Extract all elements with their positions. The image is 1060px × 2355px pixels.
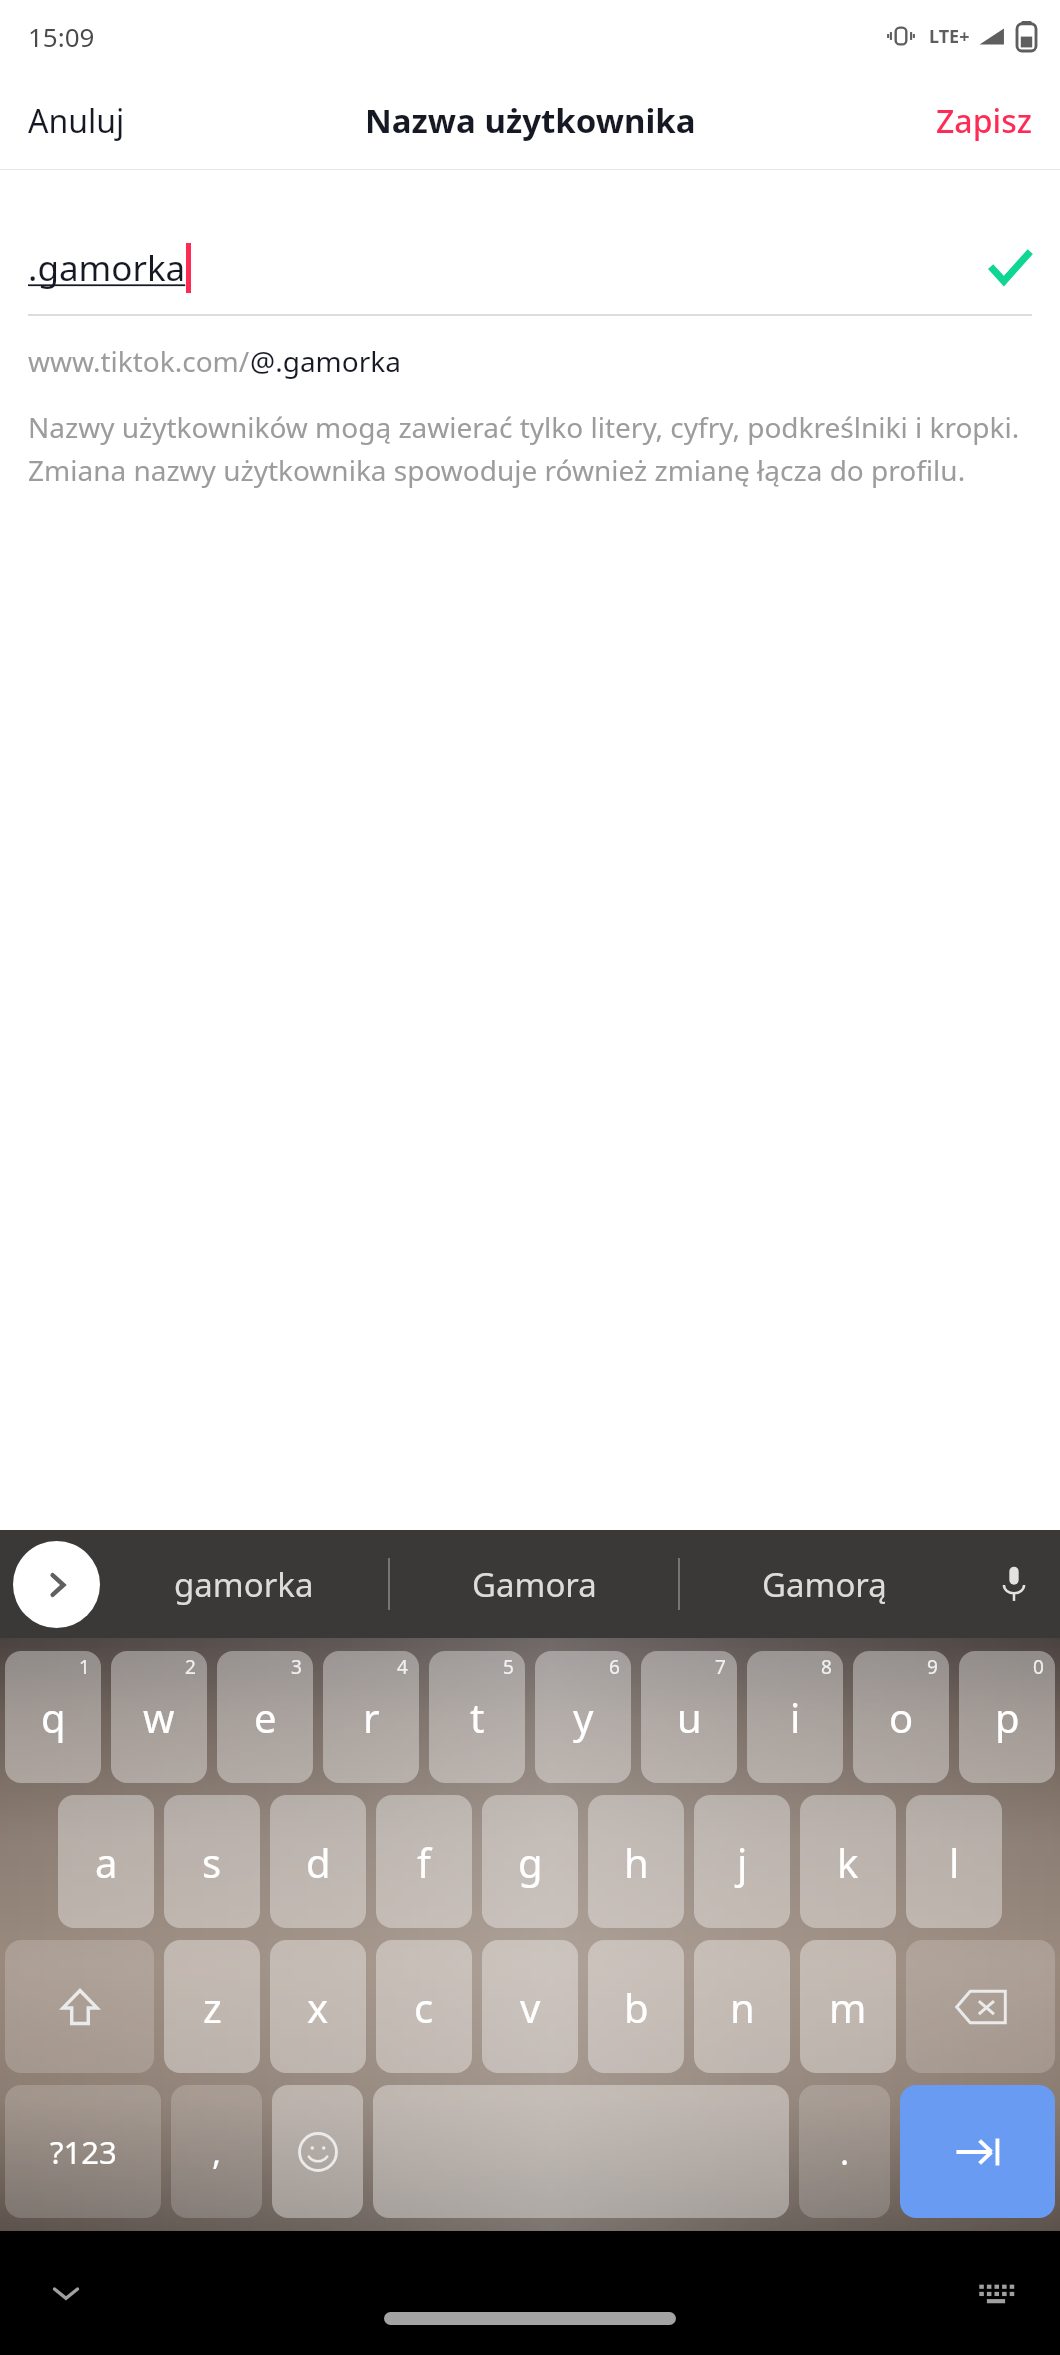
staticText: 4 xyxy=(397,1654,408,1680)
button[interactable]: Backspace xyxy=(906,1940,1055,2073)
button[interactable]: r xyxy=(323,1651,419,1783)
button[interactable]: ?123 xyxy=(5,2085,161,2218)
staticText: 2 xyxy=(185,1654,196,1680)
button[interactable]: Więcej opcji xyxy=(13,1541,100,1628)
button[interactable]: l xyxy=(906,1795,1002,1928)
button[interactable]: Zapisz xyxy=(908,81,1060,161)
staticText: LTE+ xyxy=(929,24,970,49)
button[interactable]: a xyxy=(58,1795,154,1928)
staticText: q xyxy=(41,1690,66,1744)
staticText: n xyxy=(730,1980,755,2034)
staticText: b xyxy=(624,1980,649,2034)
staticText: h xyxy=(624,1835,649,1889)
button[interactable]: h xyxy=(588,1795,684,1928)
button[interactable]: Anuluj xyxy=(0,81,153,161)
staticText: gamorka xyxy=(174,1562,314,1607)
staticText: Gamora xyxy=(472,1562,597,1607)
button[interactable]: n xyxy=(694,1940,790,2073)
staticText: s xyxy=(202,1835,222,1889)
button[interactable]: Zmień klawiaturę xyxy=(958,2255,1034,2331)
button[interactable]: Gamorą xyxy=(680,1530,968,1638)
button[interactable]: s xyxy=(164,1795,260,1928)
staticText: Anuluj xyxy=(28,99,125,143)
staticText: 0 xyxy=(1033,1654,1044,1680)
button[interactable]: m xyxy=(800,1940,896,2073)
button[interactable]: .gamorka xyxy=(0,222,1060,314)
staticText: l xyxy=(949,1835,960,1889)
button[interactable]: p xyxy=(959,1651,1055,1783)
button[interactable]: w xyxy=(111,1651,207,1783)
staticText: y xyxy=(573,1690,594,1744)
other: Dostępna nazwa xyxy=(988,246,1032,290)
button[interactable]: Spacja xyxy=(373,2085,789,2218)
button[interactable]: j xyxy=(694,1795,790,1928)
staticText: k xyxy=(837,1835,859,1889)
staticText: ?123 xyxy=(50,2131,117,2173)
staticText: d xyxy=(306,1835,331,1889)
button[interactable]: u xyxy=(641,1651,737,1783)
button[interactable]: i xyxy=(747,1651,843,1783)
button[interactable]: q xyxy=(5,1651,101,1783)
staticText: p xyxy=(995,1690,1020,1744)
button[interactable]: z xyxy=(164,1940,260,2073)
staticText: . xyxy=(840,2129,850,2175)
staticText: w xyxy=(143,1690,175,1744)
button[interactable]: k xyxy=(800,1795,896,1928)
staticText: Nazwy użytkowników mogą zawierać tylko l… xyxy=(28,408,1032,489)
staticText: j xyxy=(737,1835,748,1889)
staticText: Gamorą xyxy=(762,1562,887,1607)
staticText: 1 xyxy=(79,1654,90,1680)
button[interactable]: Shift xyxy=(5,1940,154,2073)
staticText: v xyxy=(520,1980,541,2034)
button[interactable]: f xyxy=(376,1795,472,1928)
staticText: , xyxy=(212,2129,222,2175)
staticText: c xyxy=(414,1980,434,2034)
button[interactable]: g xyxy=(482,1795,578,1928)
button[interactable]: , xyxy=(171,2085,262,2218)
button[interactable]: c xyxy=(376,1940,472,2073)
staticText: www.tiktok.com/ xyxy=(28,342,250,380)
button[interactable]: x xyxy=(270,1940,366,2073)
staticText: 8 xyxy=(821,1654,832,1680)
staticText: f xyxy=(417,1835,431,1889)
staticText: 6 xyxy=(609,1654,620,1680)
button[interactable]: Wprowadzanie głosowe xyxy=(968,1530,1060,1638)
staticText: t xyxy=(470,1690,485,1744)
staticText: a xyxy=(95,1835,118,1889)
button[interactable]: v xyxy=(482,1940,578,2073)
staticText: m xyxy=(829,1980,867,2034)
staticText: Zapisz xyxy=(936,99,1032,143)
staticText: u xyxy=(677,1690,702,1744)
button[interactable]: t xyxy=(429,1651,525,1783)
button[interactable]: . xyxy=(799,2085,890,2218)
staticText: 5 xyxy=(503,1654,514,1680)
staticText: 7 xyxy=(715,1654,726,1680)
staticText: 9 xyxy=(927,1654,938,1680)
staticText: @.gamorka xyxy=(250,342,401,380)
staticText: z xyxy=(203,1980,222,2034)
staticText: 15:09 xyxy=(28,19,95,54)
button[interactable]: y xyxy=(535,1651,631,1783)
staticText: x xyxy=(307,1980,329,2034)
button[interactable]: gamorka xyxy=(100,1530,388,1638)
staticText: o xyxy=(889,1690,914,1744)
button[interactable]: Enter xyxy=(900,2085,1055,2218)
button[interactable]: b xyxy=(588,1940,684,2073)
staticText: 3 xyxy=(291,1654,302,1680)
button[interactable]: Ukryj klawiaturę xyxy=(28,2255,104,2331)
button[interactable]: o xyxy=(853,1651,949,1783)
staticText: i xyxy=(790,1690,801,1744)
staticText: r xyxy=(363,1690,380,1744)
staticText: e xyxy=(254,1690,277,1744)
staticText: Nazwa użytkownika xyxy=(365,98,696,143)
staticText: .gamorka xyxy=(28,244,186,292)
staticText: g xyxy=(518,1835,543,1889)
button[interactable]: Gamora xyxy=(390,1530,678,1638)
button[interactable]: e xyxy=(217,1651,313,1783)
button[interactable]: Emotikony xyxy=(272,2085,363,2218)
button[interactable]: d xyxy=(270,1795,366,1928)
